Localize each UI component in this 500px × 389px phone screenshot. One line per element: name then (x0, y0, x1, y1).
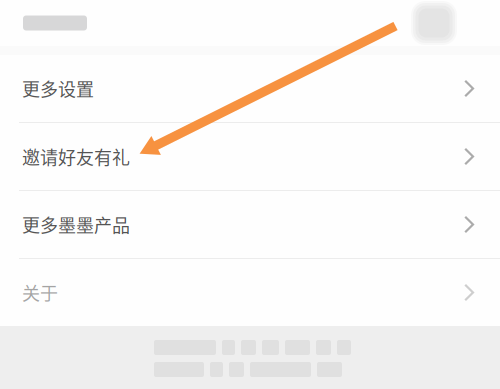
button[interactable]: 关于 (0, 259, 500, 326)
staticText: 更多墨墨产品 (22, 211, 130, 238)
button[interactable]: 邀请好友有礼 (0, 123, 500, 190)
button[interactable]: Profile (411, 1, 457, 45)
staticText: 关于 (22, 279, 58, 306)
button[interactable]: 更多墨墨产品 (0, 191, 500, 258)
staticText: 邀请好友有礼 (22, 143, 130, 170)
staticText: 更多设置 (22, 75, 94, 102)
button[interactable]: 更多设置 (0, 55, 500, 122)
